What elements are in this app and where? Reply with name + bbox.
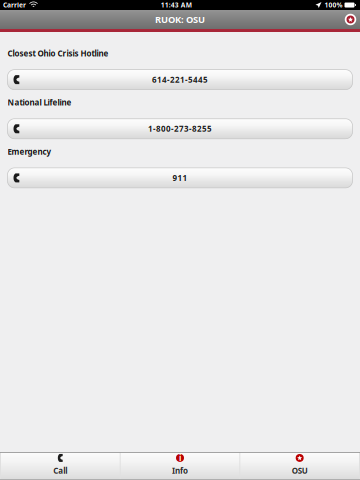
button[interactable]: i bbox=[121, 452, 239, 480]
button[interactable]: 1-800-273-8255 bbox=[7, 119, 352, 139]
staticText: Emergency bbox=[7, 146, 51, 157]
staticText: Call bbox=[53, 465, 67, 476]
staticText: 100% bbox=[324, 1, 342, 9]
staticText: National Lifeline bbox=[7, 97, 71, 108]
staticText: Closest Ohio Crisis Hotline bbox=[7, 48, 108, 59]
staticText: 11:43 AM bbox=[161, 1, 192, 9]
button[interactable]: OSU home bbox=[342, 10, 359, 28]
staticText: RUOK: OSU bbox=[155, 13, 205, 26]
staticText: Info bbox=[172, 465, 188, 476]
button[interactable]: 614-221-5445 bbox=[7, 70, 352, 90]
staticText: OSU bbox=[292, 465, 308, 476]
button[interactable]: 911 bbox=[7, 168, 352, 188]
staticText: 614-221-5445 bbox=[152, 74, 208, 85]
button[interactable]: OSU bbox=[240, 452, 359, 480]
staticText: 911 bbox=[172, 173, 187, 183]
staticText: i bbox=[179, 453, 181, 463]
staticText: 1-800-273-8255 bbox=[148, 123, 212, 134]
button[interactable]: Call bbox=[1, 452, 120, 480]
staticText: Carrier bbox=[3, 1, 26, 9]
